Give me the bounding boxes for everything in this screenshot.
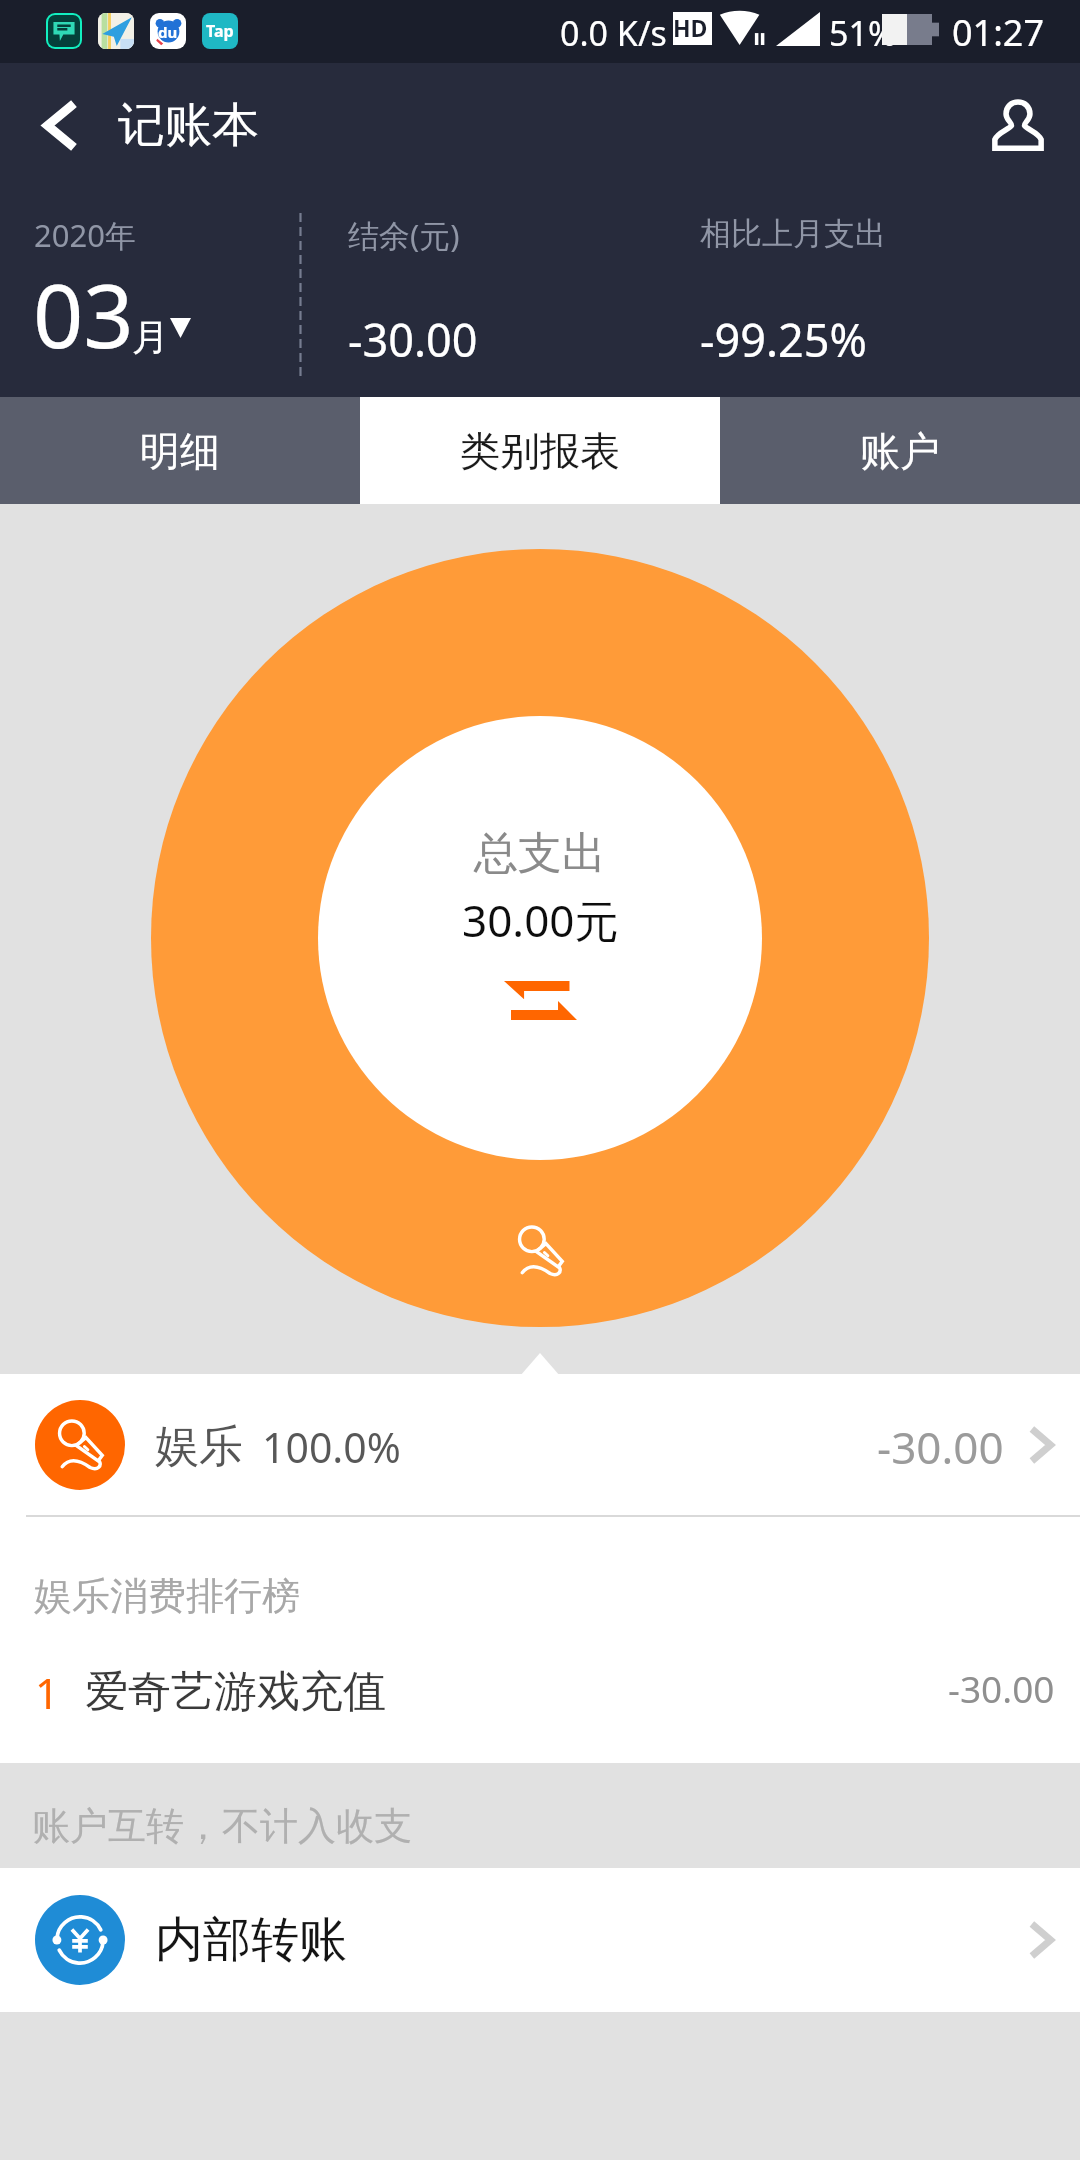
button[interactable]: Profile	[980, 88, 1056, 164]
button[interactable]: Back	[21, 77, 97, 174]
staticText: -30.00	[348, 309, 478, 370]
staticText: -30.00	[877, 1417, 1004, 1477]
staticText: 相比上月支出	[700, 214, 886, 253]
staticText: 账户互转，不计入收支	[32, 1802, 412, 1850]
staticText: 账户	[860, 426, 940, 476]
button[interactable]: 账户	[720, 397, 1080, 504]
button[interactable]: 明细	[0, 397, 360, 504]
button[interactable]: 类别报表	[360, 397, 720, 504]
staticText: 月	[132, 314, 169, 361]
button[interactable]: 娱乐	[0, 1374, 1080, 1515]
staticText: 类别报表	[460, 426, 620, 476]
staticText: Tap	[206, 20, 234, 42]
button[interactable]: 2020年	[20, 202, 210, 374]
staticText: 总支出	[474, 826, 606, 881]
staticText: 0.0 K/s	[560, 10, 667, 56]
staticText: 1	[35, 1664, 60, 1721]
staticText: 01:27	[952, 8, 1045, 57]
staticText: 内部转账	[155, 1910, 347, 1970]
button[interactable]: 1	[0, 1647, 1080, 1737]
staticText: 51%	[829, 10, 897, 56]
staticText: 100.0%	[262, 1419, 401, 1475]
staticText: -99.25%	[700, 309, 867, 370]
staticText: 03	[33, 254, 134, 374]
staticText: 结余(元)	[348, 214, 460, 256]
staticText: du	[158, 22, 178, 42]
staticText: 记账本	[118, 96, 259, 155]
staticText: 娱乐	[155, 1419, 243, 1474]
staticText: -30.00	[948, 1663, 1055, 1713]
staticText: HD²	[673, 12, 712, 45]
staticText: 爱奇艺游戏充值	[85, 1665, 386, 1719]
button[interactable]: 内部转账	[0, 1868, 1080, 2012]
staticText: 2020年	[34, 214, 136, 256]
staticText: 娱乐消费排行榜	[34, 1572, 300, 1620]
staticText: 明细	[140, 426, 220, 476]
staticText: 30.00元	[462, 890, 619, 950]
